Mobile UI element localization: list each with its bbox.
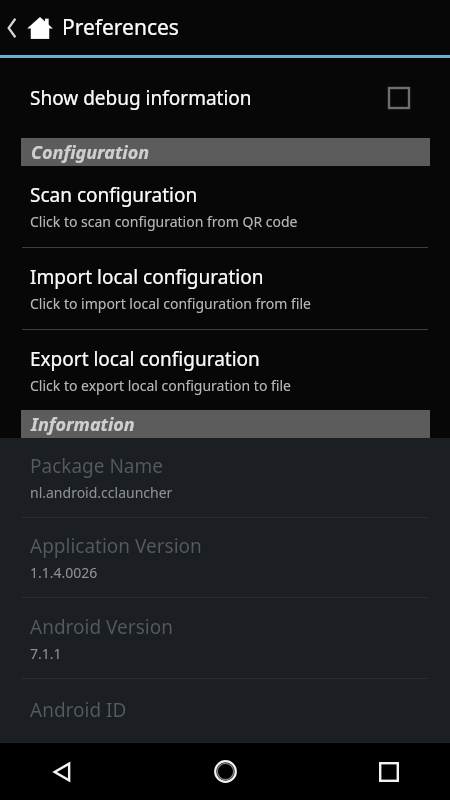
- staticText: 7.1.1: [30, 644, 62, 663]
- button[interactable]: Application Version: [0, 518, 450, 598]
- button[interactable]: Package Name: [0, 438, 450, 518]
- button[interactable]: Home: [150, 743, 300, 800]
- button[interactable]: Back: [0, 743, 150, 800]
- staticText: Information: [31, 412, 135, 437]
- button[interactable]: Android ID: [0, 679, 450, 743]
- button[interactable]: Import local configuration: [0, 248, 450, 330]
- button[interactable]: Export local configuration: [0, 330, 450, 410]
- staticText: Show debug information: [30, 85, 388, 111]
- staticText: Export local configuration: [30, 346, 260, 372]
- button[interactable]: Up, Home: [0, 0, 58, 55]
- button[interactable]: Show debug information: [0, 58, 450, 138]
- staticText: Package Name: [30, 453, 164, 479]
- staticText: nl.android.cclauncher: [30, 483, 173, 502]
- staticText: Android Version: [30, 614, 173, 640]
- staticText: Configuration: [31, 140, 150, 165]
- staticText: Click to import local configuration from…: [30, 294, 312, 313]
- staticText: Click to export local configuration to f…: [30, 376, 291, 395]
- button[interactable]: Scan configuration: [0, 166, 450, 248]
- button[interactable]: Android Version: [0, 598, 450, 679]
- staticText: Click to scan configuration from QR code: [30, 212, 298, 231]
- button[interactable]: Recent apps: [300, 743, 450, 800]
- staticText: 1.1.4.0026: [30, 563, 98, 582]
- staticText: Android ID: [30, 697, 127, 723]
- staticText: Scan configuration: [30, 182, 198, 208]
- staticText: Preferences: [62, 13, 179, 42]
- staticText: Import local configuration: [30, 264, 264, 290]
- staticText: Application Version: [30, 533, 202, 559]
